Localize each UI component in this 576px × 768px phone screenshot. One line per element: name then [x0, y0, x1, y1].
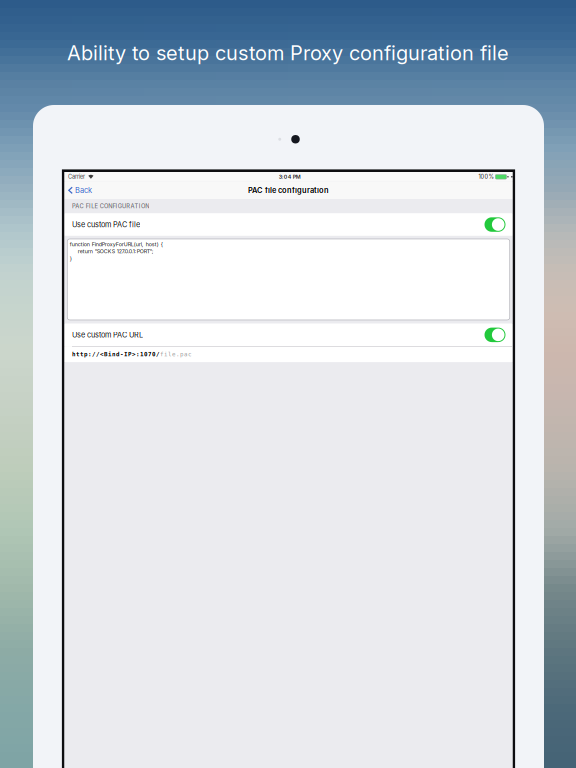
- staticText: Back: [75, 186, 92, 195]
- staticText: 100%: [478, 173, 493, 180]
- staticText: Use custom PAC URL: [72, 330, 143, 339]
- staticText: function FindProxyForURL(url, host) {: [70, 241, 163, 248]
- staticText: return "SOCKS 127.0.0.1:PORT";: [70, 248, 154, 255]
- button[interactable]: Back: [64, 182, 98, 199]
- staticText: PAC file configuration: [248, 186, 329, 195]
- staticText: }: [70, 255, 72, 262]
- staticText: http://<Bind-IP>:1070/: [72, 351, 160, 358]
- staticText: file.pac: [160, 351, 192, 358]
- staticText: 3:04 PM: [279, 174, 301, 180]
- staticText: PAC FILE CONFIGURATION: [72, 203, 149, 209]
- button[interactable]: Use custom PAC file: [64, 213, 512, 236]
- staticText: Carrier: [68, 173, 85, 180]
- staticText: Ability to setup custom Proxy configurat…: [67, 41, 509, 65]
- staticText: Use custom PAC file: [72, 220, 140, 229]
- button[interactable]: Use custom PAC URL: [64, 323, 512, 346]
